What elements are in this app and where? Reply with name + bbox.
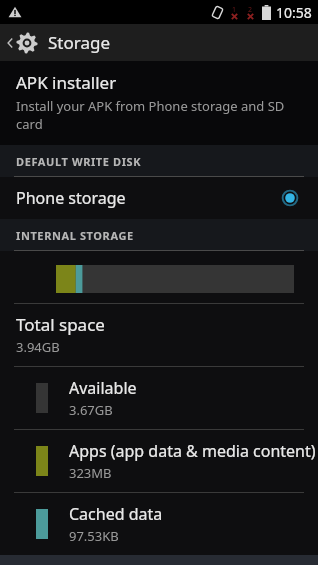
staticText: Install your APK from Phone storage and … bbox=[16, 97, 302, 133]
staticText: Apps (app data & media content) bbox=[69, 440, 316, 462]
staticText: 3.94GB bbox=[16, 338, 60, 356]
staticText: Storage bbox=[48, 31, 111, 54]
staticText: 97.53KB bbox=[69, 527, 119, 545]
staticText: Cached data bbox=[69, 503, 163, 525]
button[interactable]: Up, Storage bbox=[0, 24, 318, 61]
button[interactable]: Phone storage bbox=[0, 177, 318, 219]
staticText: DEFAULT WRITE DISK bbox=[16, 154, 142, 169]
staticText: Available bbox=[69, 377, 137, 399]
staticText: APK installer bbox=[16, 71, 117, 94]
staticText: INTERNAL STORAGE bbox=[16, 228, 134, 243]
button[interactable]: Available bbox=[0, 367, 318, 429]
staticText: 323MB bbox=[69, 464, 112, 482]
button[interactable]: APK installer bbox=[0, 61, 318, 145]
button[interactable]: Apps (app data & media content) bbox=[0, 430, 318, 492]
button[interactable]: Cached data bbox=[0, 493, 318, 555]
staticText: 3.67GB bbox=[69, 401, 113, 419]
staticText: 10:58 bbox=[276, 3, 312, 22]
staticText: Total space bbox=[16, 313, 105, 336]
staticText: 1 bbox=[232, 5, 237, 15]
staticText: 2 bbox=[248, 5, 253, 15]
staticText: Phone storage bbox=[16, 187, 282, 209]
button[interactable]: Total space bbox=[0, 304, 318, 366]
